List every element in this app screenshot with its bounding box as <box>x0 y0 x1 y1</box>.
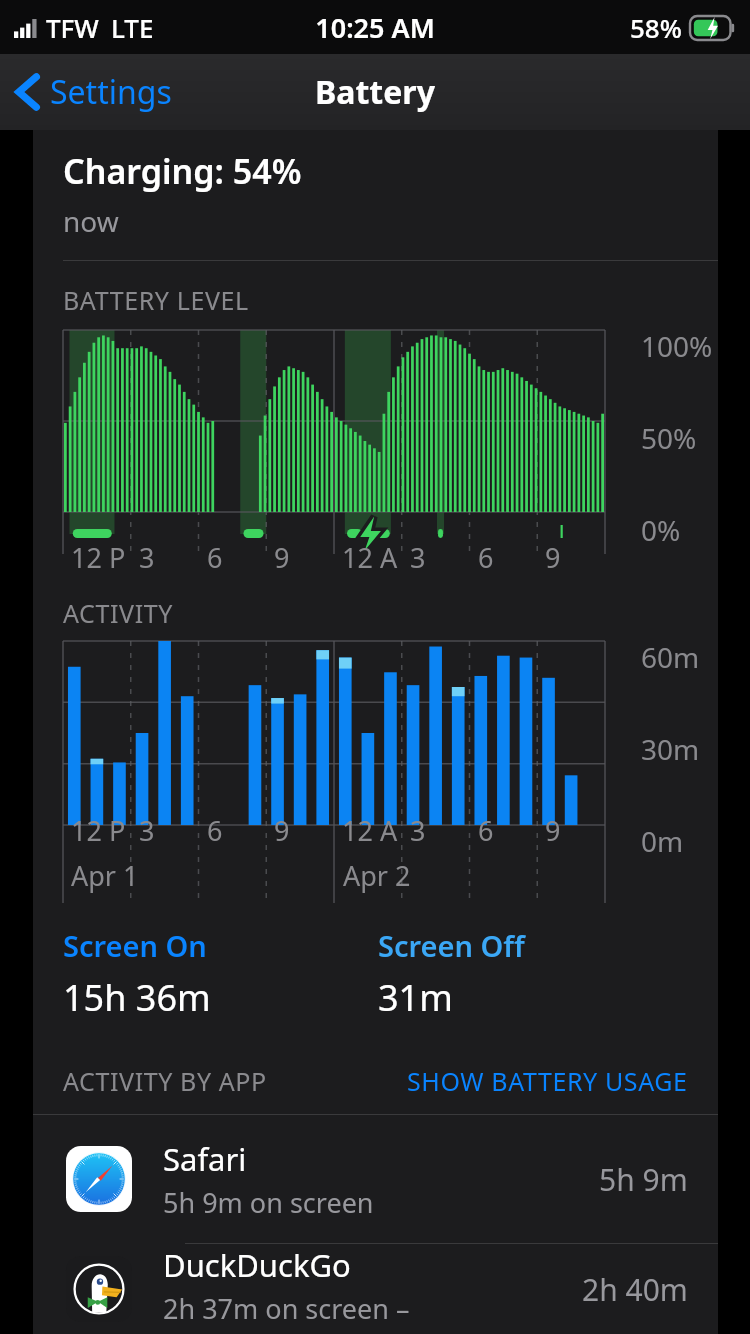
staticText: DuckDuckGo <box>163 1244 351 1286</box>
staticText: Safari <box>163 1138 247 1180</box>
staticText: Battery <box>315 70 435 114</box>
staticText: 0% <box>641 511 681 549</box>
staticText: 100% <box>641 327 713 365</box>
staticText: 3 <box>410 539 426 576</box>
staticText: Screen On <box>63 926 207 965</box>
staticText: 6 <box>207 812 223 849</box>
staticText: 12 A <box>342 812 398 849</box>
button[interactable]: DuckDuckGo <box>33 1244 718 1334</box>
staticText: 5h 9m on screen <box>163 1184 374 1221</box>
staticText: Apr 2 <box>343 857 411 894</box>
staticText: 6 <box>207 539 223 576</box>
staticText: 2h 40m <box>582 1269 688 1310</box>
staticText: 15h 36m <box>63 973 211 1022</box>
staticText: now <box>63 202 119 240</box>
button[interactable]: SHOW BATTERY USAGE <box>407 1064 688 1098</box>
staticText: 9 <box>274 812 290 849</box>
staticText: 3 <box>410 812 426 849</box>
staticText: 12 A <box>342 539 398 576</box>
staticText: 5h 9m <box>599 1159 688 1200</box>
staticText: TFW <box>46 10 99 45</box>
staticText: 50% <box>641 419 697 457</box>
staticText: 12 P <box>71 812 126 849</box>
staticText: LTE <box>111 10 154 45</box>
staticText: SHOW BATTERY USAGE <box>407 1064 688 1098</box>
staticText: 58% <box>630 10 682 45</box>
staticText: 10:25 AM <box>315 9 435 46</box>
staticText: 3 <box>139 539 155 576</box>
staticText: Charging: 54% <box>63 148 302 194</box>
staticText: Apr 1 <box>71 857 139 894</box>
staticText: 9 <box>545 812 561 849</box>
staticText: ACTIVITY <box>63 596 173 630</box>
staticText: Screen Off <box>378 926 525 965</box>
button[interactable]: Settings <box>0 62 184 122</box>
staticText: 2h 37m on screen – <box>163 1290 410 1327</box>
staticText: 9 <box>274 539 290 576</box>
staticText: 0m <box>641 822 684 860</box>
staticText: 6 <box>478 812 494 849</box>
staticText: ACTIVITY BY APP <box>63 1064 267 1098</box>
staticText: Settings <box>50 70 172 114</box>
staticText: 3 <box>139 812 155 849</box>
staticText: 6 <box>478 539 494 576</box>
staticText: 9 <box>545 539 561 576</box>
staticText: 60m <box>641 638 700 676</box>
staticText: 30m <box>641 730 700 768</box>
staticText: BATTERY LEVEL <box>63 283 249 317</box>
staticText: 12 P <box>71 539 126 576</box>
staticText: 31m <box>378 973 453 1022</box>
button[interactable]: Safari <box>33 1115 718 1243</box>
